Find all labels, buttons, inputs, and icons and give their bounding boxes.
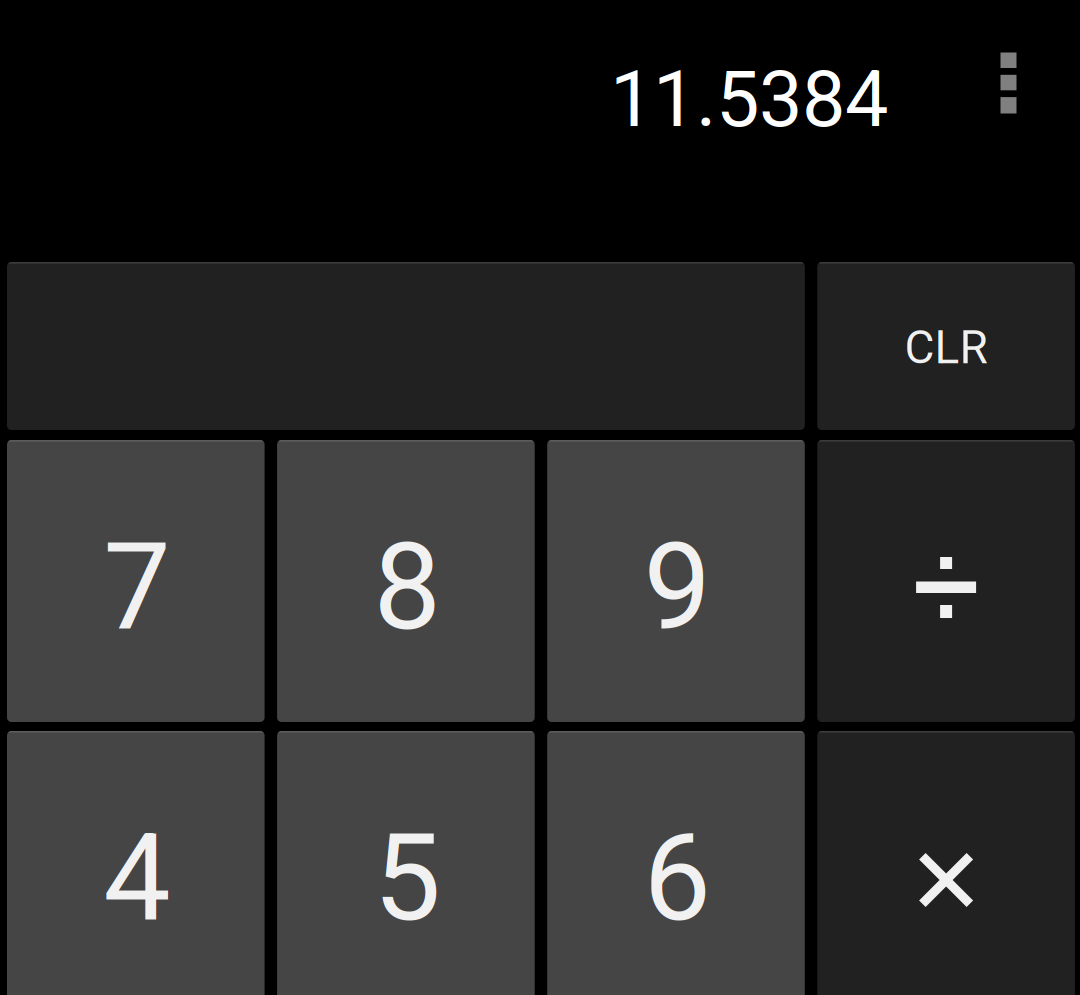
button[interactable]: Divide — [817, 440, 1075, 722]
button[interactable]: 4 — [7, 731, 265, 995]
button[interactable]: 6 — [547, 731, 805, 995]
staticText: 11.5384 — [610, 54, 888, 145]
button[interactable]: 9 — [547, 440, 805, 722]
staticText: CLR — [905, 320, 988, 374]
staticText: 4 — [103, 808, 170, 949]
button[interactable]: Multiply — [817, 731, 1075, 995]
staticText: 5 — [373, 808, 440, 949]
button[interactable]: CLR — [817, 262, 1075, 430]
staticText: 9 — [643, 517, 710, 658]
button[interactable]: More options — [960, 27, 1056, 139]
staticText: 8 — [373, 517, 440, 658]
staticText: 7 — [103, 517, 170, 658]
button[interactable]: 8 — [277, 440, 535, 722]
button[interactable]: 7 — [7, 440, 265, 722]
button[interactable]: 5 — [277, 731, 535, 995]
staticText: 6 — [643, 808, 710, 949]
